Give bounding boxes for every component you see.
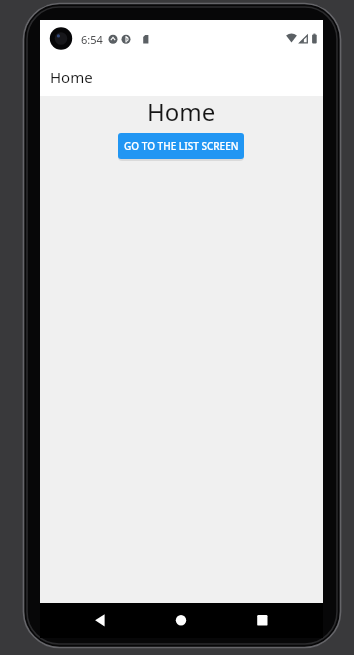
button[interactable] xyxy=(246,603,278,638)
staticText: Home xyxy=(50,67,93,87)
staticText: Home xyxy=(147,95,216,128)
button[interactable]: GO TO THE LIST SCREEN xyxy=(118,133,244,159)
staticText: 6:54 xyxy=(81,32,103,47)
button[interactable] xyxy=(165,603,197,638)
staticText: GO TO THE LIST SCREEN xyxy=(124,139,239,153)
button[interactable] xyxy=(82,603,114,638)
